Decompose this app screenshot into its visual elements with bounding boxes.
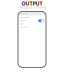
staticText: Advanced [20, 26, 28, 28]
staticText: Enable [20, 20, 25, 22]
staticText: Configure listening [17, 6, 46, 9]
staticText: Listening [20, 13, 27, 14]
staticText: Filter [20, 23, 23, 25]
staticText: Microphone [20, 17, 29, 18]
staticText: OUTPUT [21, 0, 42, 7]
